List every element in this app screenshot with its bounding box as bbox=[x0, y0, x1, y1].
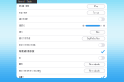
staticText: Volume bbox=[18, 24, 24, 27]
button[interactable]: Miles bbox=[90, 30, 105, 34]
button[interactable]: Turn on bbox=[98, 16, 105, 22]
button[interactable]: General Display bbox=[16, 0, 37, 3]
staticText: Terrain bbox=[93, 12, 99, 14]
button[interactable]: Video hardware decoding bbox=[16, 68, 107, 74]
button[interactable]: Points of interest bbox=[16, 48, 107, 55]
staticText: General Display bbox=[18, 1, 32, 3]
staticText: Map bbox=[94, 5, 98, 7]
button[interactable]: Map bbox=[87, 4, 105, 8]
staticText: Map view bbox=[18, 12, 27, 14]
staticText: Default view bbox=[18, 5, 29, 7]
button[interactable]: Normal quality bbox=[84, 69, 105, 73]
button[interactable]: Terrain bbox=[87, 11, 105, 15]
button[interactable]: Default view bbox=[16, 3, 107, 9]
staticText: Normal quality bbox=[89, 63, 100, 65]
staticText: Video hardware decoding bbox=[18, 70, 40, 72]
staticText: Solo mode bbox=[18, 18, 27, 20]
staticText: Units bbox=[18, 31, 22, 33]
staticText: Miles bbox=[95, 31, 99, 33]
button[interactable]: Mute menu music bbox=[16, 42, 107, 48]
button[interactable]: Deg Min Sec Float bbox=[82, 37, 105, 41]
button[interactable]: Turn on bbox=[98, 42, 105, 48]
button[interactable]: Units bbox=[16, 29, 107, 35]
staticText: Mute menu music bbox=[18, 44, 35, 46]
staticText: Deg Min Sec Float bbox=[87, 38, 100, 40]
staticText: Normal quality bbox=[89, 70, 100, 72]
button[interactable]: Solo mode bbox=[16, 16, 107, 22]
button[interactable]: Normal quality bbox=[84, 62, 105, 66]
button[interactable]: Video bbox=[16, 61, 107, 67]
staticText: Quality bbox=[18, 76, 23, 78]
staticText: Points of interest bbox=[18, 50, 34, 53]
button[interactable]: 3D bbox=[16, 55, 107, 61]
staticText: 3D bbox=[18, 57, 20, 59]
staticText: Video bbox=[18, 63, 22, 65]
button[interactable]: Quality bbox=[16, 74, 107, 80]
button[interactable]: Turn on bbox=[98, 55, 105, 61]
button[interactable]: Date format bbox=[16, 36, 107, 42]
staticText: Date format bbox=[18, 37, 30, 40]
button[interactable]: Volume bbox=[16, 23, 107, 29]
button[interactable]: Map view bbox=[16, 10, 107, 16]
